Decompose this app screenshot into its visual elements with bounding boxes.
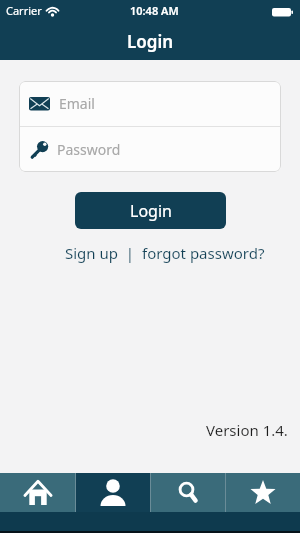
button[interactable] bbox=[226, 473, 300, 512]
button[interactable] bbox=[0, 473, 75, 512]
staticText: forgot password? bbox=[142, 243, 265, 263]
button[interactable] bbox=[151, 473, 225, 512]
button[interactable]: Password bbox=[19, 127, 281, 172]
button[interactable] bbox=[76, 473, 150, 512]
staticText: | bbox=[118, 243, 142, 263]
staticText: Version 1.4. bbox=[206, 420, 288, 440]
button[interactable]: Login bbox=[75, 192, 226, 229]
staticText: Carrier bbox=[6, 3, 42, 18]
button[interactable]: Sign up bbox=[65, 243, 118, 263]
staticText: Sign up bbox=[65, 243, 118, 263]
staticText: Email bbox=[59, 94, 95, 113]
button[interactable]: forgot password? bbox=[142, 243, 265, 263]
staticText: Login bbox=[127, 30, 174, 53]
button[interactable]: Email bbox=[19, 81, 281, 126]
staticText: Password bbox=[57, 140, 121, 159]
staticText: Login bbox=[130, 200, 172, 222]
staticText: 10:48 AM bbox=[130, 3, 179, 18]
